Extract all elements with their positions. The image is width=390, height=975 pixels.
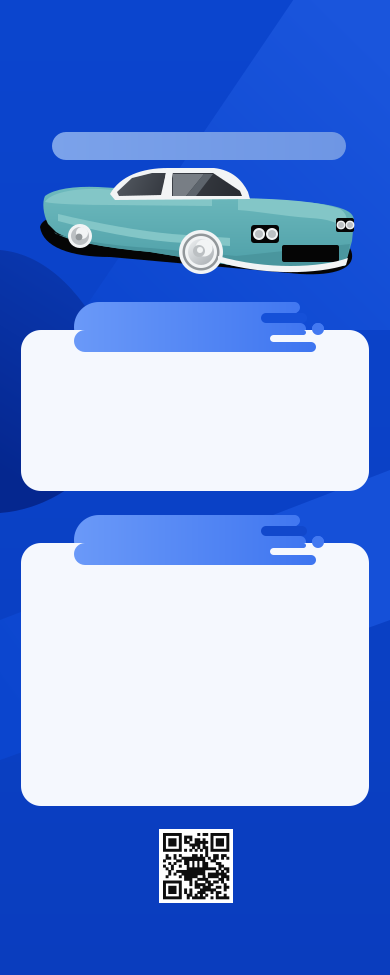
button[interactable]: Vehicle details (0, 0, 390, 975)
button[interactable]: Search (0, 0, 390, 975)
button[interactable]: Offer details (0, 0, 390, 975)
